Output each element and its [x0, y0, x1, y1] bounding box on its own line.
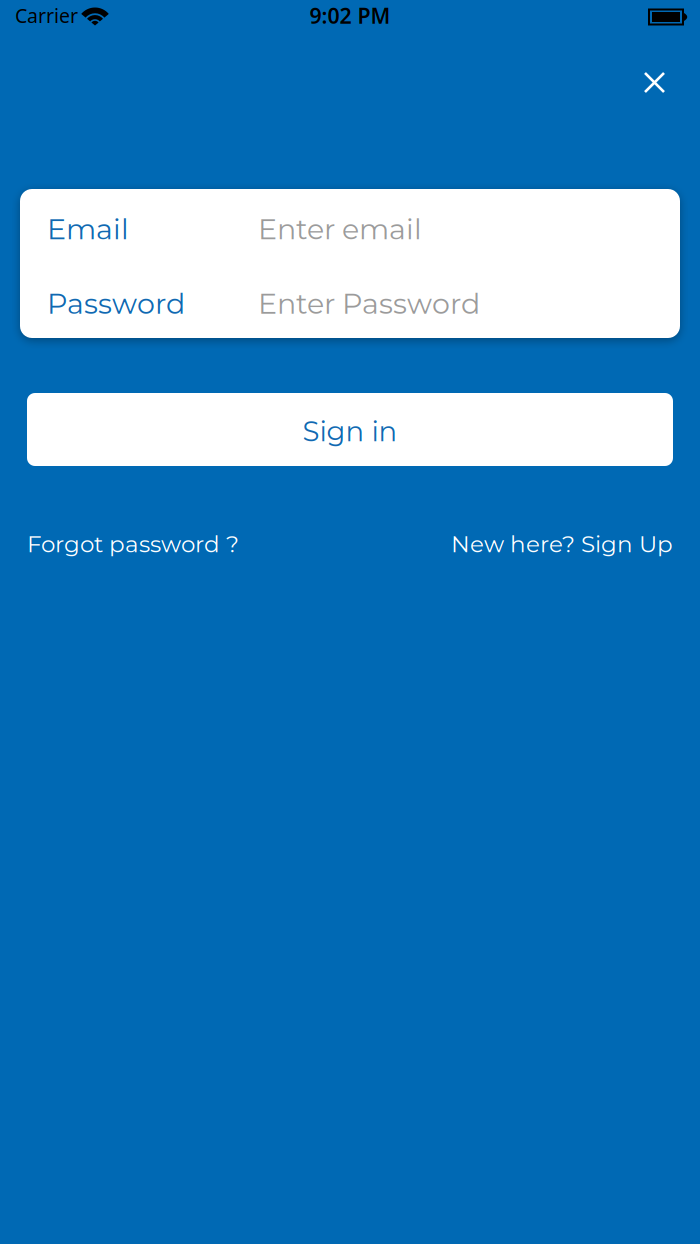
button[interactable]: Forgot password ? — [27, 530, 239, 558]
staticText: Carrier — [15, 2, 78, 29]
button[interactable]: New here? Sign Up — [451, 530, 673, 558]
staticText: Enter Password — [258, 286, 480, 321]
staticText: Password — [47, 286, 185, 321]
button[interactable]: Sign in — [27, 393, 673, 466]
staticText: Email — [47, 212, 129, 246]
button[interactable]: Close — [642, 70, 667, 95]
staticText: 9:02 PM — [309, 1, 390, 30]
staticText: Sign in — [302, 415, 397, 448]
staticText: New here? Sign Up — [451, 530, 673, 558]
staticText: Enter email — [258, 212, 422, 246]
staticText: Forgot password ? — [27, 530, 239, 558]
